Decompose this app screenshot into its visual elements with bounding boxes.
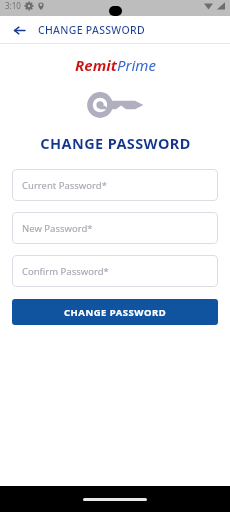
staticText: 3:10: [5, 0, 21, 11]
button[interactable]: Back: [8, 19, 30, 41]
staticText: Remit: [75, 55, 117, 75]
staticText: Confirm Password*: [22, 265, 109, 278]
staticText: CHANGE PASSWORD: [40, 133, 191, 153]
staticText: Prime: [117, 55, 156, 75]
staticText: CHANGE PASSWORD: [38, 23, 145, 37]
staticText: Current Password*: [22, 179, 107, 192]
other: Key: [86, 91, 144, 119]
button[interactable]: Confirm Password*: [12, 255, 218, 287]
staticText: New Password*: [22, 222, 93, 235]
button[interactable]: Current Password*: [12, 169, 218, 201]
button[interactable]: CHANGE PASSWORD: [12, 299, 218, 325]
staticText: CHANGE PASSWORD: [64, 306, 167, 319]
button[interactable]: New Password*: [12, 212, 218, 244]
